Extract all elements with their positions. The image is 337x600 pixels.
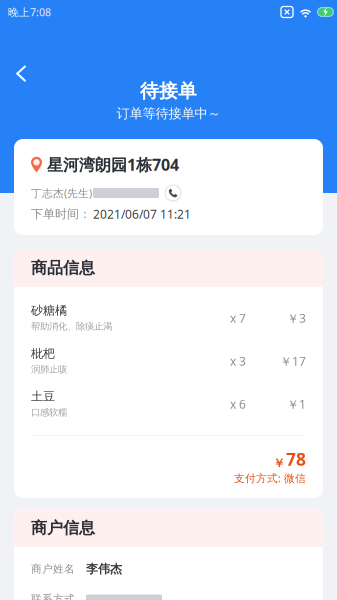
staticText: 78 xyxy=(286,447,306,470)
staticText: 商户信息 xyxy=(31,518,95,538)
staticText: 支付方式: 微信 xyxy=(234,471,306,485)
staticText: 待接单 xyxy=(140,79,197,102)
staticText: 丁志杰(先生) xyxy=(31,186,92,200)
staticText: 枇杷 xyxy=(31,346,55,361)
staticText: 订单等待接单中～ xyxy=(116,105,220,122)
staticText: 商户姓名 xyxy=(31,562,75,575)
staticText: ￥ xyxy=(273,456,285,470)
staticText: ￥17 xyxy=(280,353,306,369)
staticText: 2021/06/07 11:21 xyxy=(93,206,191,222)
staticText: 口感软糯 xyxy=(31,407,67,418)
staticText: x 6 xyxy=(230,396,246,412)
staticText: 商品信息 xyxy=(31,258,95,278)
staticText: 星河湾朗园1栋704 xyxy=(47,154,179,175)
staticText: ￥1 xyxy=(287,396,306,412)
staticText: x 3 xyxy=(230,353,246,369)
staticText: 砂糖橘 xyxy=(31,303,67,318)
staticText: x 7 xyxy=(230,310,246,326)
staticText: 联系方式 xyxy=(31,592,75,600)
staticText: 下单时间： xyxy=(31,207,91,221)
staticText: 土豆 xyxy=(31,389,55,404)
staticText: 润肺止咳 xyxy=(31,364,67,375)
button[interactable]: Back xyxy=(16,56,52,90)
button[interactable]: Call customer xyxy=(165,185,181,201)
staticText: 帮助消化、除痰止渴 xyxy=(31,321,112,332)
staticText: 晚上7:08 xyxy=(8,5,51,19)
staticText: 李伟杰 xyxy=(86,562,122,576)
staticText: ￥3 xyxy=(287,310,306,326)
